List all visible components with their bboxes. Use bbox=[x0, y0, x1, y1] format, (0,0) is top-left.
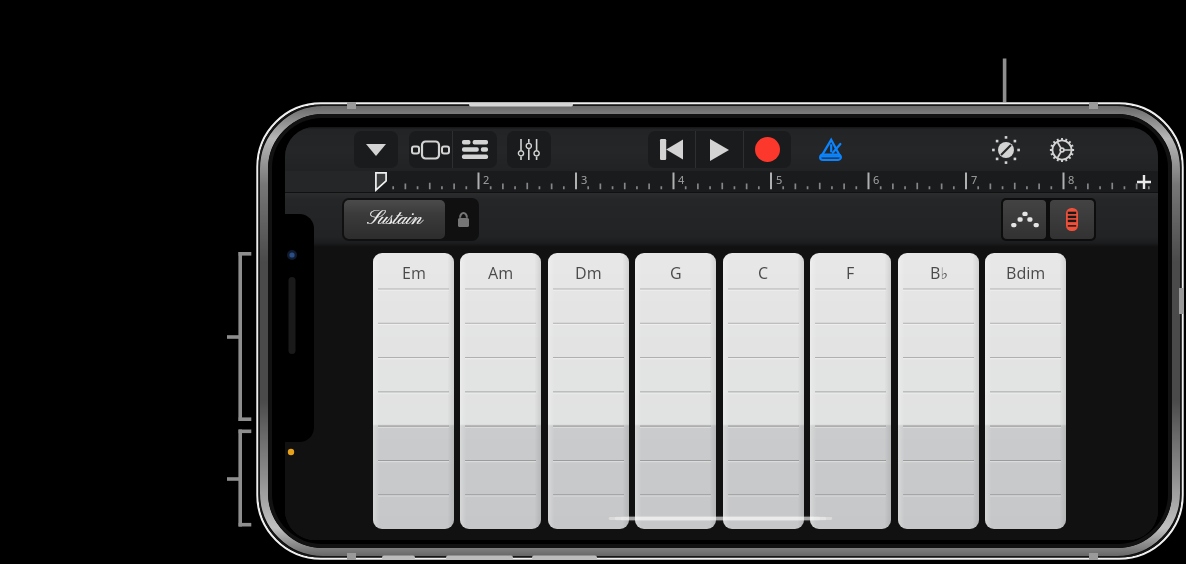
staticText: Am bbox=[488, 262, 514, 284]
staticText: 6 bbox=[873, 172, 880, 187]
staticText: 4 bbox=[678, 172, 685, 187]
staticText: 3 bbox=[581, 172, 588, 187]
button[interactable]: Play bbox=[696, 131, 743, 168]
button[interactable]: Am bbox=[460, 253, 541, 529]
staticText: 5 bbox=[776, 172, 783, 187]
staticText: 2 bbox=[483, 172, 490, 187]
staticText: 7 bbox=[971, 172, 978, 187]
button[interactable]: My Songs bbox=[354, 131, 398, 168]
staticText: Em bbox=[402, 262, 426, 284]
button[interactable]: Metronome bbox=[812, 130, 849, 168]
button[interactable]: Settings bbox=[1044, 132, 1080, 168]
button[interactable]: Tracks view bbox=[453, 131, 497, 168]
button[interactable]: B♭ bbox=[898, 253, 979, 529]
button[interactable]: Record bbox=[744, 131, 791, 168]
staticText: B♭ bbox=[930, 262, 948, 284]
staticText: Sustain bbox=[367, 206, 423, 232]
button[interactable]: Mixer bbox=[507, 131, 551, 168]
button[interactable]: Sustain bbox=[344, 200, 445, 239]
button[interactable]: Go to beginning bbox=[648, 131, 695, 168]
button[interactable]: G bbox=[635, 253, 716, 529]
button[interactable]: Lock sustain bbox=[447, 198, 479, 241]
staticText: C bbox=[758, 262, 769, 284]
staticText: 8 bbox=[1068, 172, 1075, 187]
staticText: Bdim bbox=[1006, 262, 1046, 284]
button[interactable]: C bbox=[723, 253, 804, 529]
button[interactable]: Dm bbox=[548, 253, 629, 529]
staticText: Dm bbox=[575, 262, 602, 284]
staticText: F bbox=[846, 262, 855, 284]
button[interactable]: Em bbox=[373, 253, 454, 529]
button[interactable]: F bbox=[810, 253, 891, 529]
button[interactable]: Chords bbox=[1003, 200, 1046, 239]
staticText: G bbox=[670, 262, 682, 284]
button[interactable]: Add section bbox=[1130, 171, 1158, 192]
button[interactable]: Loop browser bbox=[988, 132, 1024, 168]
button[interactable]: Notes bbox=[1050, 200, 1094, 239]
button[interactable]: Instrument view bbox=[409, 131, 452, 168]
button[interactable]: Bdim bbox=[985, 253, 1066, 529]
